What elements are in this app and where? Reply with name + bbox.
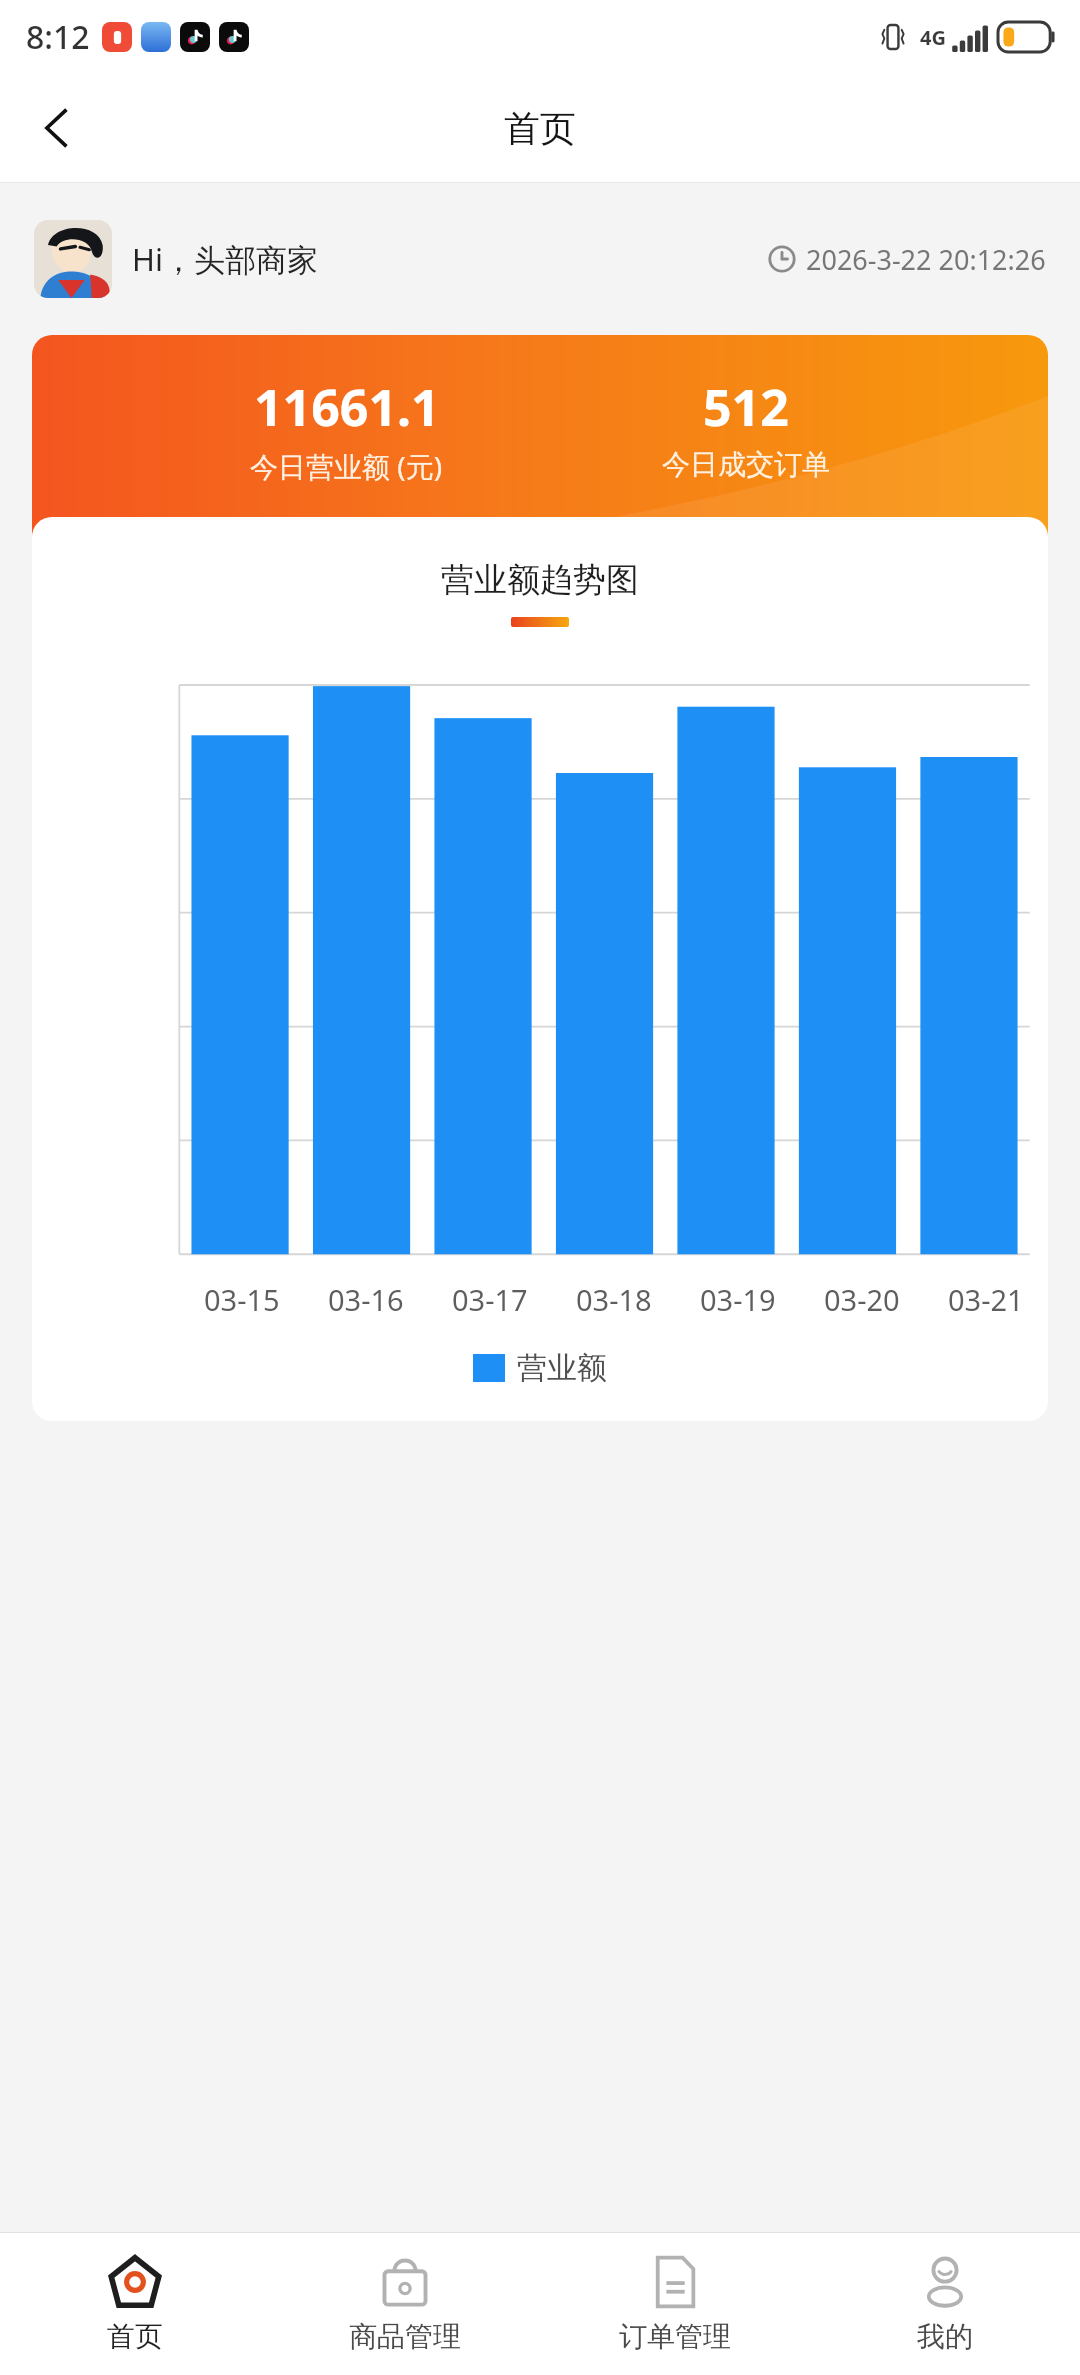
staticText: 03-17 bbox=[452, 1280, 528, 1319]
button[interactable]: 商品管理 bbox=[270, 2233, 540, 2375]
staticText: 今日营业额 (元) bbox=[250, 447, 443, 485]
staticText: 首页 bbox=[107, 2319, 163, 2354]
staticText: 2026-3-22 20:12:26 bbox=[806, 241, 1046, 278]
staticText: 今日成交订单 bbox=[662, 447, 830, 482]
staticText: 8:12 bbox=[26, 15, 90, 59]
staticText: 03-20 bbox=[824, 1280, 900, 1319]
button[interactable]: 首页 bbox=[0, 2233, 270, 2375]
staticText: 03-18 bbox=[576, 1280, 652, 1319]
staticText: 商品管理 bbox=[349, 2319, 461, 2354]
button[interactable]: Profile avatar bbox=[34, 220, 112, 298]
staticText: 订单管理 bbox=[619, 2319, 731, 2354]
staticText: 11661.1 bbox=[254, 373, 440, 441]
staticText: 我的 bbox=[917, 2319, 973, 2354]
staticText: 首页 bbox=[504, 106, 576, 151]
staticText: 营业额 bbox=[517, 1349, 607, 1387]
staticText: 营业额趋势图 bbox=[32, 559, 1048, 601]
button[interactable]: Back bbox=[18, 90, 94, 166]
staticText: 03-21 bbox=[948, 1280, 1024, 1319]
staticText: 512 bbox=[703, 373, 789, 441]
button[interactable]: 我的 bbox=[810, 2233, 1080, 2375]
button[interactable]: 订单管理 bbox=[540, 2233, 810, 2375]
staticText: 03-15 bbox=[204, 1280, 280, 1319]
staticText: 4G bbox=[920, 24, 946, 51]
staticText: Hi，头部商家 bbox=[132, 238, 318, 280]
button[interactable]: 11661.1 bbox=[32, 335, 1048, 553]
staticText: 03-19 bbox=[700, 1280, 776, 1319]
staticText: 03-16 bbox=[328, 1280, 404, 1319]
